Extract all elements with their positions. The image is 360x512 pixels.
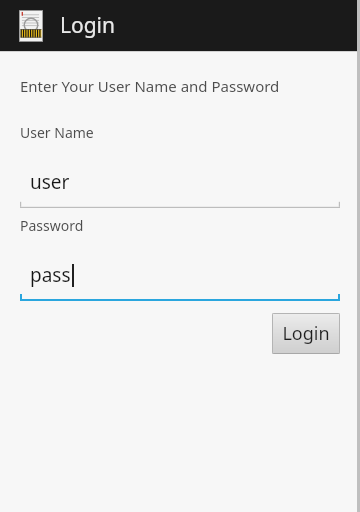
staticText: User Name xyxy=(20,123,94,142)
staticText: Enter Your User Name and Password xyxy=(20,76,280,96)
button[interactable]: App icon xyxy=(0,0,360,51)
staticText: Password xyxy=(20,216,84,235)
staticText: user xyxy=(30,169,70,195)
button[interactable]: user xyxy=(20,168,340,208)
button[interactable]: Login xyxy=(272,313,340,354)
staticText: Login xyxy=(282,321,330,346)
button[interactable]: pass xyxy=(20,261,340,301)
staticText: Login xyxy=(60,11,116,40)
other: App icon xyxy=(18,10,44,42)
staticText: pass xyxy=(30,262,71,288)
